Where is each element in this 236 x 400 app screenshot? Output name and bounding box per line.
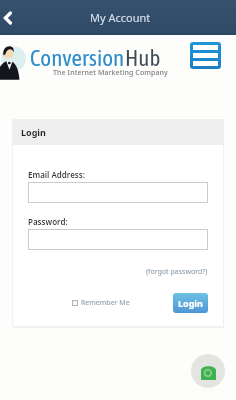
staticText: Password: [28,216,68,227]
button[interactable]: Chat on WhatsApp [191,354,225,388]
button[interactable] [28,229,208,250]
staticText: My Account [90,10,151,25]
staticText: Conversion [30,45,125,71]
button[interactable]: Back [0,0,18,34]
staticText: Email Address: [28,169,85,180]
button[interactable]: Login [173,293,208,313]
button[interactable]: (forgot password?) [146,267,208,277]
button[interactable] [28,182,208,203]
staticText: Login [178,297,203,309]
staticText: Login [21,126,46,138]
staticText: Remember Me [81,298,130,308]
staticText: The Internet Marketing Company [53,68,168,78]
staticText: Hub [125,45,161,71]
button[interactable]: Menu [190,42,221,69]
button[interactable]: Remember Me [72,298,130,308]
